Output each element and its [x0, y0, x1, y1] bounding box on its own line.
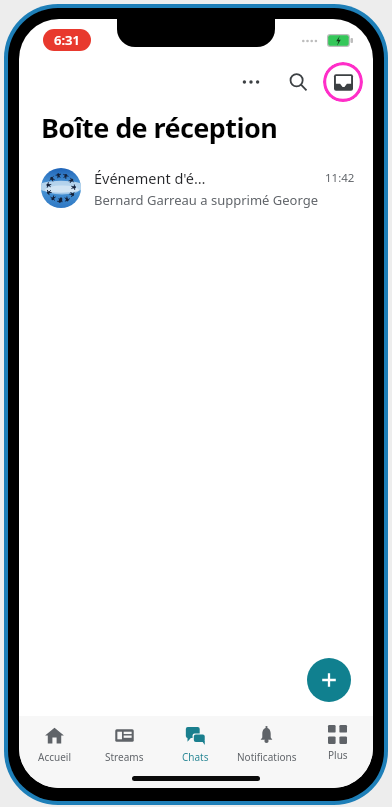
staticText: Événement d'équipe [94, 168, 209, 188]
button[interactable]: Événement d'équipe [19, 166, 373, 219]
button[interactable]: Plus [302, 725, 373, 788]
staticText: Chats [182, 750, 209, 764]
button[interactable]: Chats [160, 725, 231, 788]
staticText: Bernard Garreau a supprimé George Harris… [94, 191, 355, 209]
staticText: Boîte de réception [41, 109, 278, 146]
staticText: 6:31 [54, 31, 80, 49]
button[interactable]: Streams [89, 725, 160, 788]
button[interactable]: Notifications [231, 725, 302, 788]
staticText: 11:42 [325, 170, 355, 186]
button[interactable]: Search [279, 63, 317, 101]
button[interactable]: More options [233, 64, 269, 100]
button[interactable]: Accueil [19, 725, 89, 788]
staticText: Streams [105, 750, 144, 764]
button[interactable]: New chat [307, 658, 351, 702]
staticText: Plus [328, 748, 348, 762]
staticText: Accueil [38, 750, 71, 764]
staticText: Notifications [237, 750, 297, 764]
button[interactable]: Inbox [323, 62, 363, 102]
